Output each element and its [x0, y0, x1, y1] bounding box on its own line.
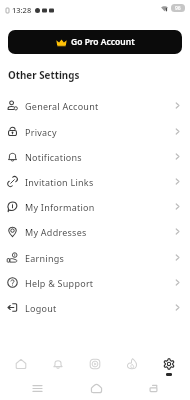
- button[interactable]: Logout: [0, 295, 190, 320]
- staticText: Earnings: [25, 252, 65, 264]
- button[interactable]: My Information: [0, 194, 190, 219]
- button[interactable]: Notifications: [43, 348, 73, 378]
- button[interactable]: Settings: [154, 348, 184, 378]
- staticText: Other Settings: [8, 69, 80, 82]
- staticText: 13:28: [12, 5, 32, 15]
- button[interactable]: Recents: [27, 378, 47, 398]
- staticText: Invitation Links: [25, 176, 94, 188]
- staticText: Logout: [25, 302, 57, 314]
- button[interactable]: Go Pro Account: [8, 30, 182, 54]
- button[interactable]: Privacy: [0, 119, 190, 144]
- button[interactable]: Videos: [80, 348, 110, 378]
- button[interactable]: My Addresses: [0, 219, 190, 244]
- button[interactable]: Home: [6, 348, 36, 378]
- staticText: Go Pro Account: [71, 36, 135, 48]
- staticText: 96: [175, 5, 181, 12]
- button[interactable]: General Account: [0, 93, 190, 118]
- staticText: Notifications: [25, 151, 82, 163]
- button[interactable]: Home: [86, 378, 106, 398]
- button[interactable]: Help & Support: [0, 270, 190, 295]
- staticText: General Account: [25, 100, 99, 112]
- staticText: Privacy: [25, 126, 57, 138]
- button[interactable]: Invitation Links: [0, 169, 190, 194]
- staticText: My Addresses: [25, 226, 87, 238]
- staticText: Help & Support: [25, 277, 94, 289]
- button[interactable]: Notifications: [0, 144, 190, 169]
- staticText: My Information: [25, 201, 95, 213]
- button[interactable]: Earnings: [0, 245, 190, 270]
- button[interactable]: Back: [143, 378, 163, 398]
- button[interactable]: Trending: [117, 348, 147, 378]
